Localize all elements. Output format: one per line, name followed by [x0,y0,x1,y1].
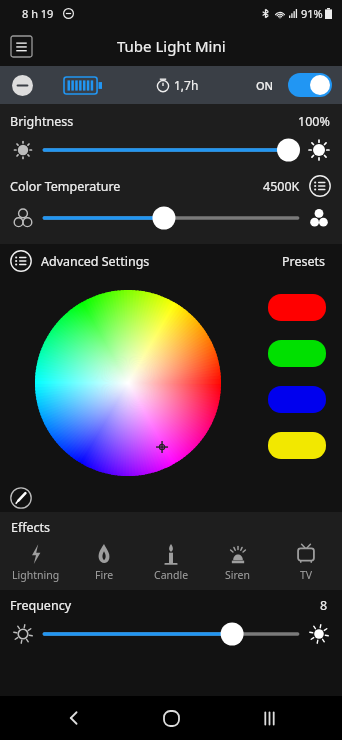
button[interactable]: Candle [140,541,202,584]
staticText: Color Temperature [10,178,121,195]
button[interactable]: Slider [42,617,300,651]
staticText: Candle [154,568,189,582]
button[interactable]: Recents [245,696,293,740]
button[interactable]: Disconnect [10,73,34,97]
staticText: Frequency [10,597,72,614]
button[interactable]: Slider [42,133,300,167]
button[interactable]: Home [147,696,195,740]
staticText: 91% [301,6,323,21]
staticText: Siren [225,568,251,582]
staticText: 8 [320,597,328,614]
staticText: Lightning [12,568,60,582]
button[interactable]: Back [50,696,98,740]
staticText: Tube Light Mini [117,36,226,56]
button[interactable]: Red preset [268,294,326,321]
button[interactable]: Fire [73,541,135,584]
button[interactable]: Temperature presets [308,174,332,198]
button[interactable]: Slider [42,201,300,235]
staticText: 4500K [263,178,300,195]
button[interactable]: Green preset [268,340,326,367]
staticText: Presets [282,253,326,270]
staticText: ON [256,78,274,93]
button[interactable]: Menu [9,34,33,58]
button[interactable]: Presets [282,253,326,270]
staticText: Brightness [10,113,74,130]
staticText: 1,7h [174,77,199,93]
button[interactable]: Yellow preset [268,432,326,459]
staticText: Effects [11,519,51,536]
staticText: Fire [95,568,114,582]
button[interactable]: Color wheel [35,290,221,476]
button[interactable]: Lightning [5,541,67,584]
staticText: Advanced Settings [41,253,150,270]
staticText: 8 h 19 [22,6,54,21]
staticText: TV [300,568,313,582]
button[interactable]: TV [275,541,337,584]
button[interactable]: Advanced Settings [10,250,150,272]
button[interactable]: Power toggle [288,73,332,97]
button[interactable]: Color picker [9,486,33,510]
button[interactable]: Blue preset [268,386,326,413]
staticText: 100% [298,113,330,130]
button[interactable]: Siren [207,541,269,584]
